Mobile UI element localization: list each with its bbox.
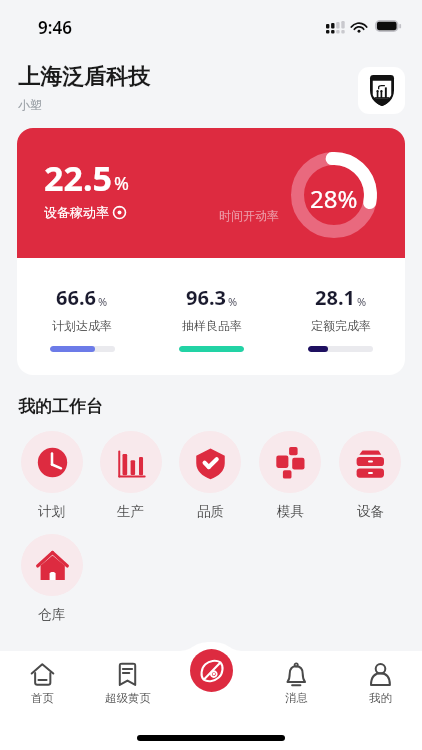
- button[interactable]: 模具: [250, 431, 330, 520]
- staticText: 时间开动率: [219, 208, 279, 223]
- staticText: 上海泛盾科技: [18, 63, 150, 91]
- staticText: 模具: [277, 503, 304, 520]
- button[interactable]: 我的: [338, 660, 422, 708]
- staticText: %: [357, 294, 367, 309]
- staticText: 96.3: [186, 284, 226, 311]
- staticText: 消息: [285, 691, 308, 705]
- staticText: 仓库: [38, 606, 65, 623]
- staticText: 22.5: [44, 155, 112, 201]
- staticText: 我的工作台: [18, 396, 103, 417]
- button[interactable]: 设备: [330, 431, 410, 520]
- button[interactable]: 生产: [91, 431, 170, 520]
- staticText: 66.6: [56, 284, 96, 311]
- button[interactable]: Company logo: [358, 67, 405, 114]
- button[interactable]: Discover: [190, 649, 233, 692]
- staticText: 9:46: [38, 16, 72, 39]
- button[interactable]: 消息: [254, 660, 338, 708]
- staticText: 设备: [357, 503, 384, 520]
- staticText: 计划达成率: [52, 318, 112, 333]
- staticText: 计划: [38, 503, 65, 520]
- staticText: 品质: [197, 503, 224, 520]
- staticText: 28%: [310, 182, 358, 215]
- staticText: 超级黄页: [105, 691, 151, 705]
- button[interactable]: 首页: [0, 660, 85, 708]
- staticText: 我的: [369, 691, 392, 705]
- staticText: 设备稼动率: [44, 204, 109, 220]
- staticText: 生产: [117, 503, 144, 520]
- staticText: 抽样良品率: [182, 318, 242, 333]
- staticText: %: [228, 294, 238, 309]
- staticText: 小塑: [18, 97, 42, 112]
- staticText: 28.1: [315, 284, 355, 311]
- staticText: %: [98, 294, 108, 309]
- staticText: %: [114, 171, 129, 196]
- button[interactable]: 品质: [170, 431, 250, 520]
- staticText: 首页: [31, 691, 54, 705]
- button[interactable]: 计划: [12, 431, 91, 520]
- button[interactable]: 超级黄页: [85, 660, 170, 708]
- staticText: 定额完成率: [311, 318, 371, 333]
- button[interactable]: 仓库: [12, 534, 91, 623]
